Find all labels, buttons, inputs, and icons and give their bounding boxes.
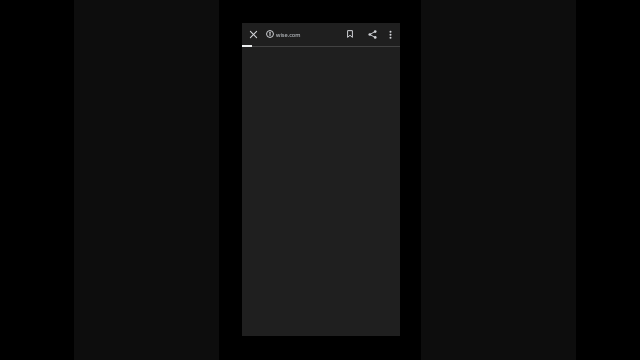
button[interactable]: Share [364, 23, 380, 45]
button[interactable]: Site information [262, 23, 278, 45]
staticText: wise.com [276, 31, 301, 39]
button[interactable]: Bookmark [342, 23, 358, 45]
button[interactable]: wise.com [276, 23, 338, 45]
button[interactable]: More options [382, 23, 398, 45]
button[interactable]: Close [245, 23, 261, 45]
